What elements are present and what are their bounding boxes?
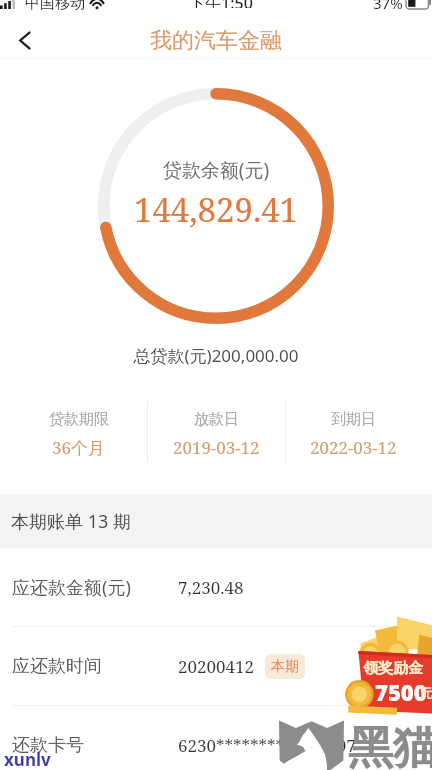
staticText: 7,230.48 [178, 576, 244, 599]
staticText: 应还款时间 [12, 655, 102, 678]
staticText: 本期账单 13 期 [11, 509, 131, 534]
button[interactable]: 贷款期限 [10, 401, 148, 459]
staticText: 我的汽车金融 [150, 27, 282, 55]
staticText: 本期 [271, 658, 299, 676]
staticText: 贷款期限 [49, 410, 109, 429]
staticText: 中国移动 [25, 0, 85, 10]
button[interactable]: 应还款金额(元) [0, 548, 432, 626]
staticText: 2019-03-12 [173, 436, 260, 459]
button[interactable]: 还款卡号 [0, 706, 432, 770]
staticText: 还款卡号 [12, 734, 84, 757]
staticText: 下午1:50 [189, 0, 253, 8]
staticText: 领奖励金 [363, 659, 423, 678]
staticText: 元 [420, 685, 432, 701]
staticText: 144,829.41 [0, 187, 432, 232]
button[interactable]: 领奖励金 7500元 [340, 610, 432, 718]
staticText: 黑猫 [348, 720, 432, 770]
button[interactable]: 到期日 [285, 401, 422, 459]
staticText: 总贷款(元)200,000.00 [0, 344, 432, 367]
button[interactable]: 放款日 [148, 401, 285, 459]
staticText: 2022-03-12 [310, 436, 397, 459]
staticText: 37% [373, 0, 403, 9]
staticText: 贷款余额(元) [0, 157, 432, 183]
staticText: xunlv [4, 748, 51, 770]
staticText: 36个月 [52, 436, 106, 459]
staticText: 应还款金额(元) [12, 575, 131, 600]
staticText: 放款日 [194, 410, 239, 429]
button[interactable]: 应还款时间 [0, 627, 432, 705]
staticText: 6230************3297 [178, 734, 357, 757]
staticText: 7500 [375, 677, 427, 707]
staticText: 20200412 [178, 655, 255, 678]
button[interactable]: Back [0, 22, 44, 59]
staticText: 到期日 [331, 410, 376, 429]
